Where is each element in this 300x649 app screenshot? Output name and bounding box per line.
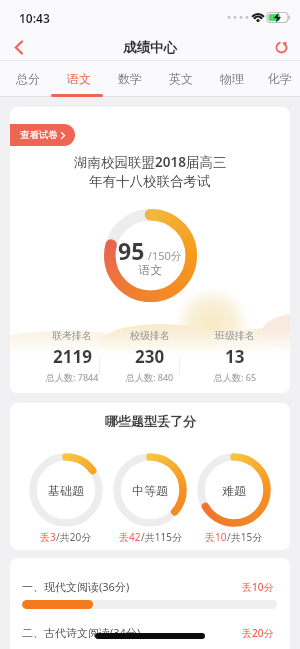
staticText: 总人数: 7844 [46,371,99,383]
staticText: 联考排名 [52,329,92,342]
button[interactable] [268,34,294,60]
staticText: 数学 [118,71,142,86]
staticText: 2119 [53,345,92,368]
staticText: /共115分 [141,530,182,544]
button[interactable]: 数学 [104,61,155,96]
staticText: 语文 [67,71,91,86]
staticText: 95 [118,235,145,266]
staticText: 基础题 [48,483,84,498]
button[interactable]: 物理 [206,61,257,96]
staticText: /共20分 [56,530,92,544]
staticText: 一、现代文阅读(36分) [22,579,130,594]
staticText: 丢10 [205,530,227,544]
staticText: 哪些题型丢了分 [105,413,196,429]
staticText: 班级排名 [215,329,255,342]
button[interactable]: 语文 [53,61,104,96]
staticText: 英文 [169,71,193,86]
staticText: 中等题 [132,483,168,498]
staticText: 丢3 [40,530,56,544]
button[interactable]: 英文 [155,61,206,96]
button[interactable]: 查看试卷 [10,124,75,146]
staticText: /150分 [145,248,182,263]
staticText: 230 [135,345,165,368]
button[interactable]: 化学 [257,61,300,96]
staticText: 总人数: 65 [214,371,257,383]
button[interactable] [6,34,32,60]
staticText: 化学 [268,71,292,86]
staticText: 二、古代诗文阅读(34分) [22,625,141,640]
staticText: 年有十八校联合考试 [89,173,211,190]
staticText: 总人数: 840 [126,371,174,383]
staticText: 语文 [139,263,162,277]
staticText: 成绩中心 [123,39,177,56]
button[interactable]: 二、古代诗文阅读(34分) [22,625,274,640]
button[interactable]: 一、现代文阅读(36分) [22,579,274,594]
staticText: 10:43 [19,10,50,26]
staticText: 湖南校园联盟2018届高三 [74,153,227,171]
staticText: 校级排名 [130,329,170,342]
staticText: 物理 [220,71,244,86]
staticText: 查看试卷 [20,129,58,141]
staticText: 总分 [16,71,40,86]
staticText: 难题 [222,483,246,498]
staticText: 13 [225,345,245,368]
staticText: 丢10分 [242,580,274,594]
staticText: 丢20分 [242,626,274,640]
staticText: /共15分 [227,530,263,544]
button[interactable]: 总分 [2,61,53,96]
staticText: 丢42 [119,530,141,544]
